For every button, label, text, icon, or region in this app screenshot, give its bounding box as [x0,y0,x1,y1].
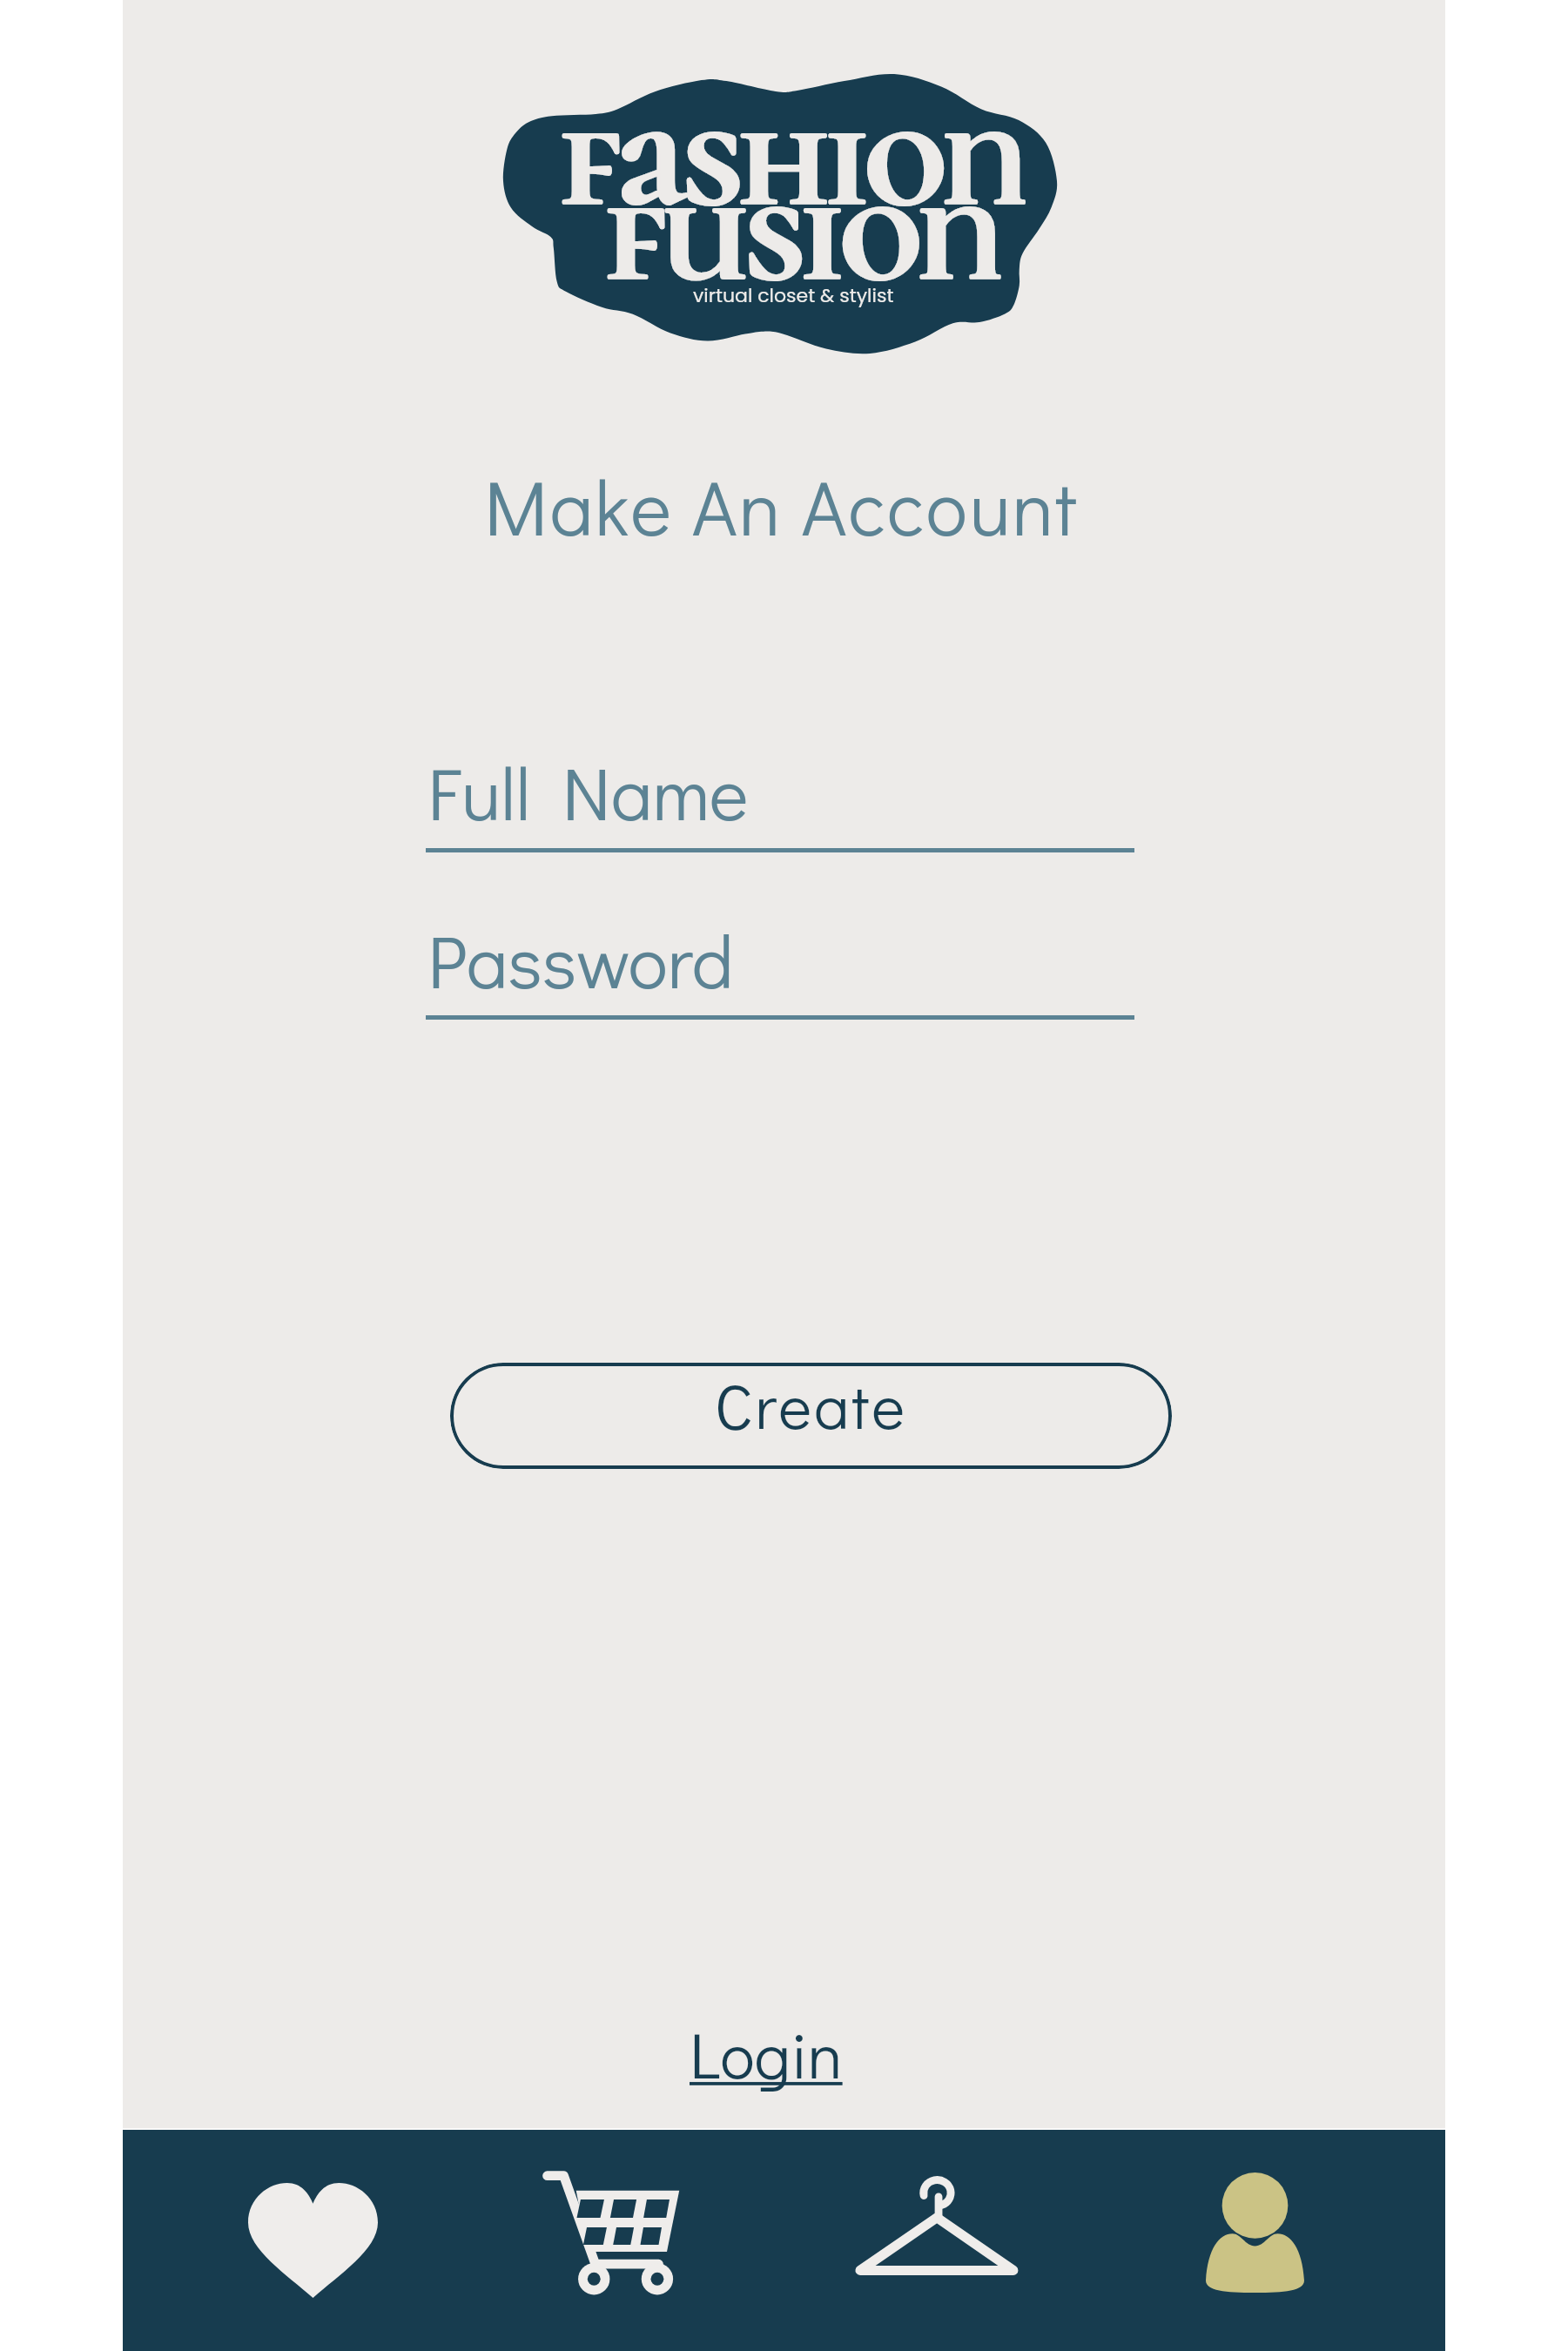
button[interactable]: Password [426,876,1134,1020]
staticText: fashion [560,70,1024,245]
button[interactable]: Favorites [230,2130,395,2351]
staticText: Create [715,1364,908,1445]
button[interactable]: Closet [855,2130,1020,2351]
staticText: fusion [605,145,999,320]
staticText: Make An Account [484,455,1079,556]
button[interactable]: Create [450,1363,1172,1469]
button[interactable]: Full Name [426,708,1134,852]
staticText: fusion [605,145,999,320]
staticText: Login [690,2011,843,2096]
staticText: Password [427,911,734,1007]
staticText: Full Name [427,743,749,839]
staticText: virtual closet & stylist [693,282,894,309]
button[interactable]: Profile [1172,2130,1337,2351]
staticText: fashion [560,70,1024,245]
button[interactable]: Login [677,2003,855,2105]
button[interactable]: Cart [528,2130,694,2351]
